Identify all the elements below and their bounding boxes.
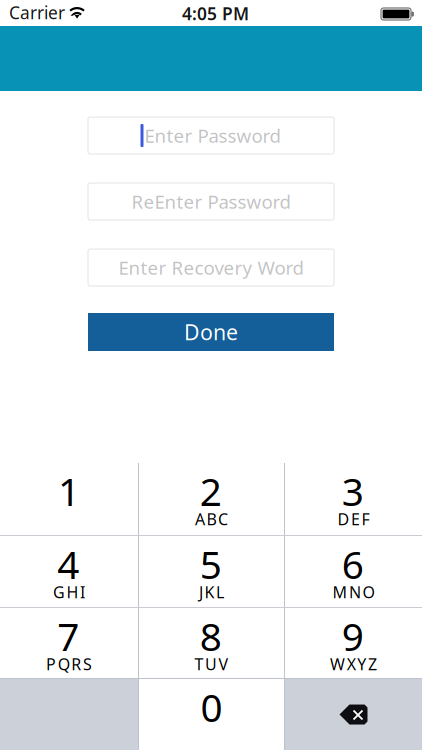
- button[interactable]: Delete: [285, 679, 422, 750]
- staticText: 7: [57, 610, 79, 662]
- button[interactable]: 8: [139, 608, 284, 679]
- staticText: JKL: [199, 581, 224, 603]
- staticText: Enter Recovery Word: [118, 255, 303, 280]
- staticText: PQRS: [46, 653, 92, 675]
- staticText: WXYZ: [330, 653, 377, 675]
- staticText: TUV: [194, 653, 229, 675]
- button[interactable]: ReEnter Password: [88, 183, 334, 220]
- button[interactable]: Done: [88, 313, 334, 351]
- button[interactable]: 4: [0, 536, 138, 607]
- staticText: 1: [58, 465, 80, 517]
- button[interactable]: 5: [139, 536, 284, 607]
- staticText: 8: [200, 610, 222, 662]
- staticText: Enter Password: [144, 123, 280, 148]
- staticText: 4:05 PM: [182, 2, 249, 25]
- staticText: 2: [200, 465, 222, 517]
- button[interactable]: Enter Password: [88, 117, 334, 154]
- staticText: 6: [342, 538, 364, 590]
- staticText: Carrier: [9, 1, 65, 24]
- staticText: ABC: [195, 508, 228, 530]
- staticText: MNO: [332, 581, 375, 603]
- staticText: 5: [200, 538, 222, 590]
- button[interactable]: 1: [0, 463, 138, 534]
- button[interactable]: 6: [285, 536, 422, 607]
- staticText: 9: [342, 610, 364, 662]
- staticText: ReEnter Password: [131, 189, 290, 214]
- staticText: DEF: [337, 508, 370, 530]
- button[interactable]: Enter Recovery Word: [88, 249, 334, 286]
- button[interactable]: 3: [285, 463, 422, 534]
- staticText: 4: [57, 538, 79, 590]
- button[interactable]: 7: [0, 608, 138, 679]
- staticText: Done: [184, 318, 238, 346]
- staticText: GHI: [53, 581, 85, 603]
- button[interactable]: 0: [139, 679, 284, 750]
- button[interactable]: 2: [139, 463, 284, 534]
- staticText: 0: [200, 681, 222, 733]
- staticText: 3: [342, 465, 364, 517]
- button[interactable]: 9: [285, 608, 422, 679]
